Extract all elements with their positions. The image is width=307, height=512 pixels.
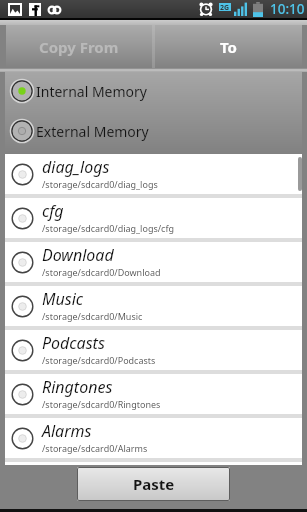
- staticText: /storage/sdcard0/Alarms: [42, 442, 148, 454]
- staticText: /storage/sdcard0/Ringtones: [42, 398, 161, 410]
- button[interactable]: Paste: [77, 467, 230, 501]
- staticText: 10:10: [270, 0, 305, 18]
- button[interactable]: Download: [5, 242, 302, 282]
- staticText: /storage/sdcard0/diag_logs: [42, 178, 158, 190]
- button[interactable]: Ringtones: [5, 374, 302, 414]
- button[interactable]: Copy From: [6, 25, 152, 68]
- button[interactable]: Music: [5, 286, 302, 326]
- staticText: /storage/sdcard0/Music: [42, 310, 143, 322]
- staticText: cfg: [42, 200, 64, 222]
- staticText: /storage/sdcard0/diag_logs/cfg: [42, 222, 175, 234]
- button[interactable]: diag_logs: [5, 154, 302, 194]
- staticText: Music: [42, 288, 84, 310]
- button[interactable]: Alarms: [5, 418, 302, 458]
- staticText: diag_logs: [42, 156, 110, 178]
- button[interactable]: cfg: [5, 198, 302, 238]
- staticText: Internal Memory: [36, 82, 147, 101]
- staticText: /storage/sdcard0/Download: [42, 266, 161, 278]
- button[interactable]: To: [155, 25, 302, 68]
- button[interactable]: Internal Memory: [5, 79, 302, 103]
- staticText: Download: [42, 244, 114, 266]
- staticText: 2G: [220, 3, 230, 11]
- button[interactable]: Podcasts: [5, 330, 302, 370]
- staticText: Ringtones: [42, 376, 113, 398]
- staticText: External Memory: [36, 122, 149, 141]
- staticText: Paste: [133, 474, 175, 494]
- staticText: To: [220, 37, 237, 57]
- staticText: Podcasts: [42, 332, 105, 354]
- button[interactable]: External Memory: [5, 119, 302, 143]
- staticText: Copy From: [39, 37, 119, 57]
- staticText: Alarms: [42, 420, 92, 442]
- staticText: /storage/sdcard0/Podcasts: [42, 354, 156, 366]
